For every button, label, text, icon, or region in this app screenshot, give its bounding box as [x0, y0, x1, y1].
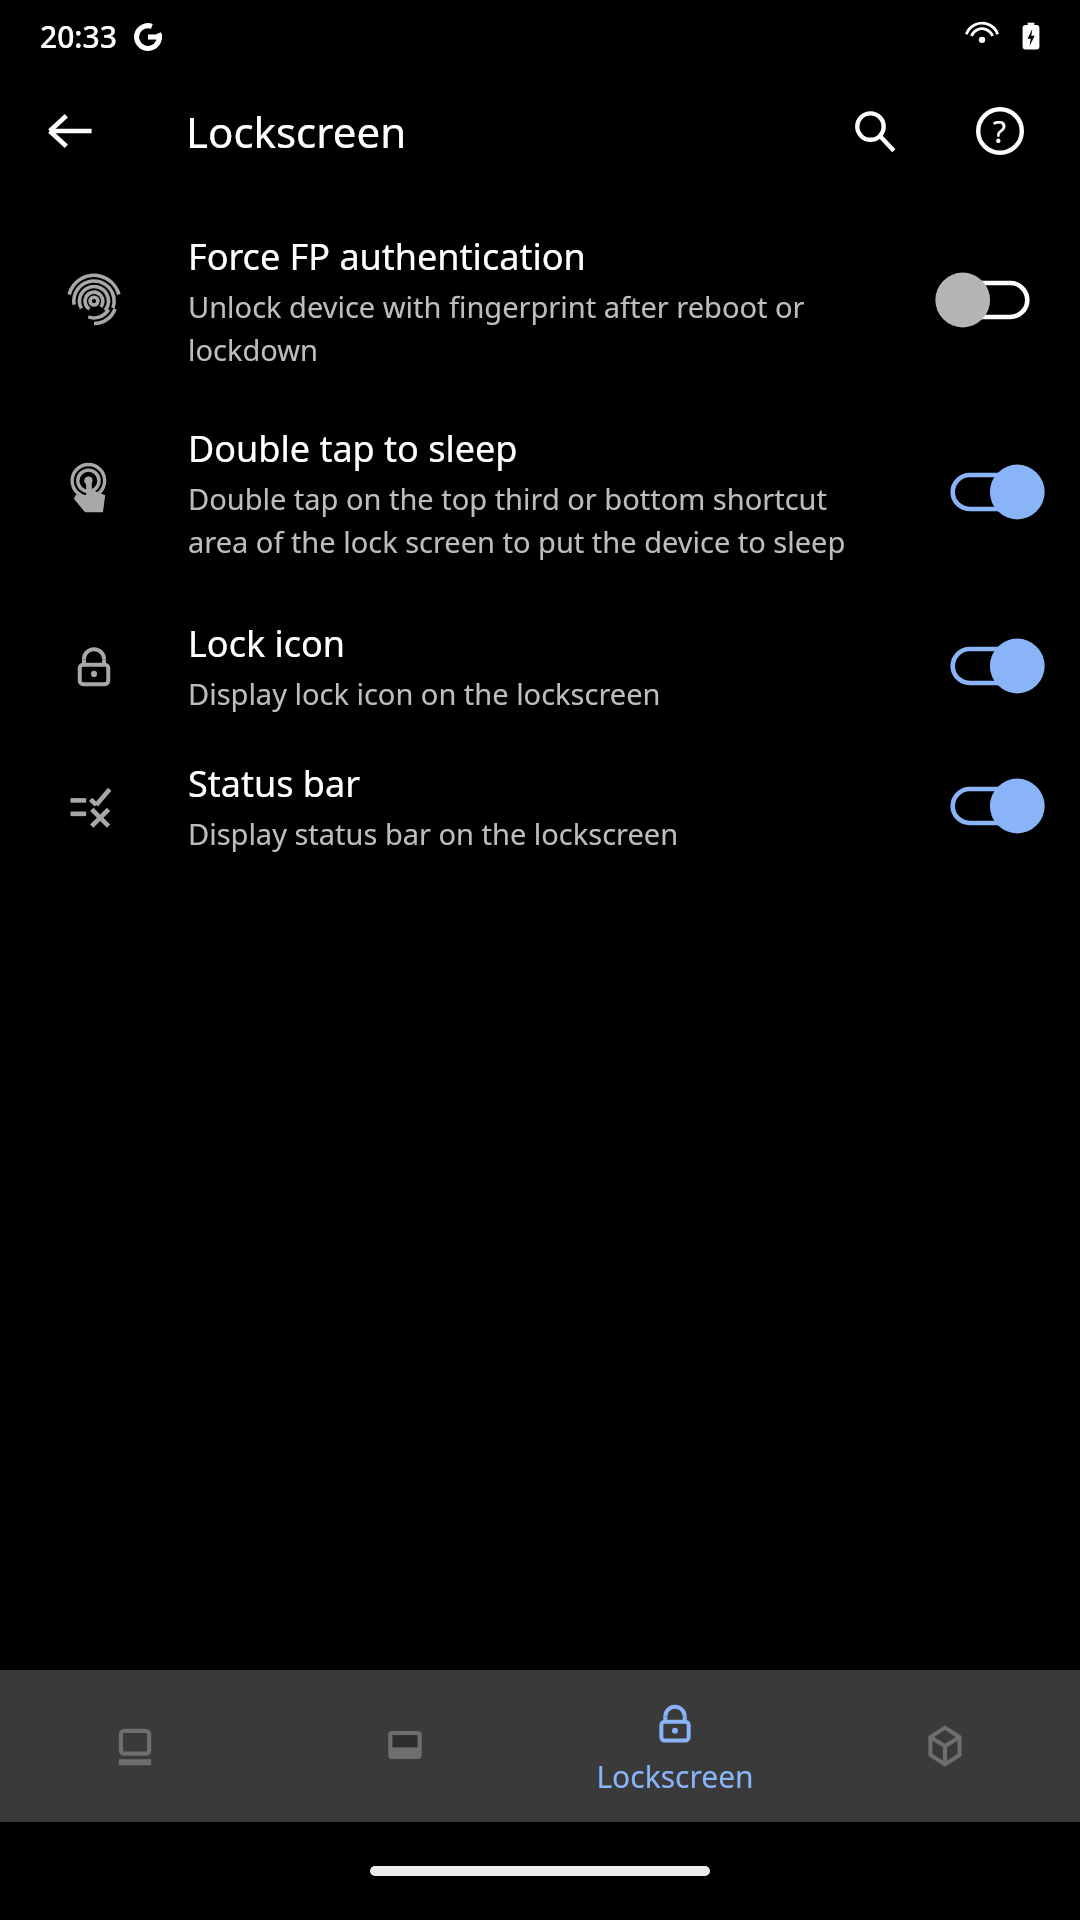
staticText: Force FP authentication [188, 232, 586, 281]
button[interactable]: Help [956, 87, 1044, 175]
staticText: Unlock device with fingerprint after reb… [188, 287, 876, 369]
button[interactable]: Back [26, 87, 114, 175]
button[interactable]: Double tap to sleep [0, 388, 1080, 596]
staticText: Display lock icon on the lockscreen [188, 674, 661, 713]
button[interactable]: Display [0, 1670, 270, 1822]
button[interactable]: Lock icon [900, 596, 1080, 736]
button[interactable]: Status bar [0, 736, 1080, 876]
button[interactable]: Force FP authentication [900, 212, 1080, 388]
staticText: Status bar [188, 759, 361, 808]
staticText: Double tap to sleep [188, 424, 518, 473]
button[interactable]: Status bar [900, 736, 1080, 876]
button[interactable]: Shade [270, 1670, 540, 1822]
staticText: Lock icon [188, 619, 346, 668]
staticText: Lockscreen [186, 103, 407, 160]
staticText: ? [993, 111, 1007, 152]
button[interactable]: Search [830, 87, 918, 175]
button[interactable]: Force FP authentication [0, 212, 1080, 388]
button[interactable]: Lockscreen [540, 1670, 810, 1822]
button[interactable]: Lock icon [0, 596, 1080, 736]
button[interactable]: Double tap to sleep [900, 388, 1080, 596]
staticText: Double tap on the top third or bottom sh… [188, 479, 876, 561]
button[interactable]: Misc [810, 1670, 1080, 1822]
staticText: Display status bar on the lockscreen [188, 814, 679, 853]
staticText: 20:33 [40, 16, 117, 57]
staticText: Lockscreen [596, 1756, 754, 1797]
